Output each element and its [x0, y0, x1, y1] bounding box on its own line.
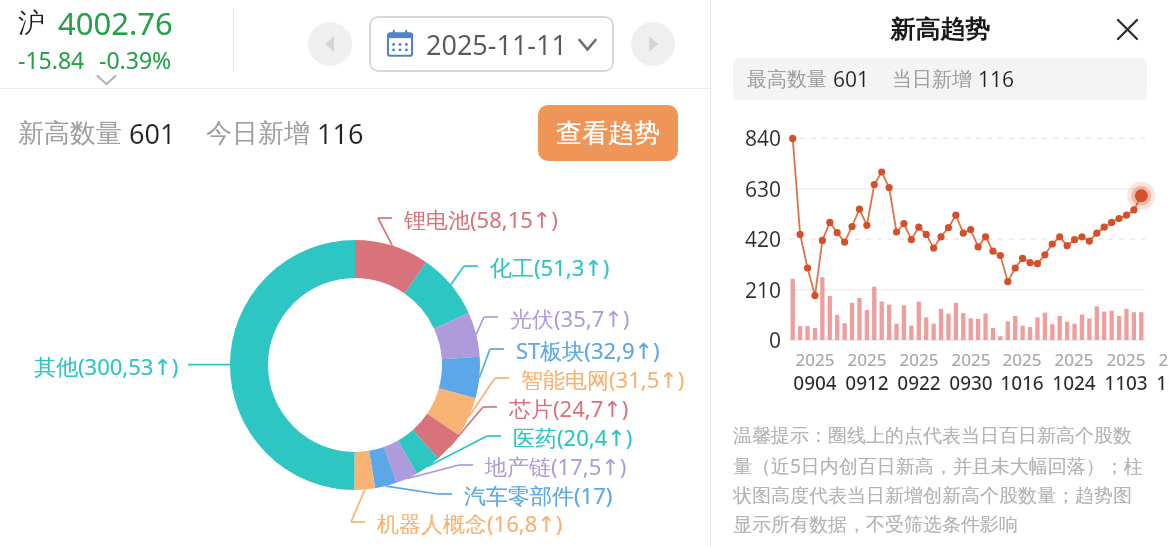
- staticText: 116: [317, 115, 364, 152]
- staticText: 光伏(35,7↑): [510, 303, 630, 333]
- staticText: 医药(20,4↑): [513, 422, 633, 452]
- staticText: 0912: [839, 370, 895, 396]
- staticText: 4002.76: [58, 2, 173, 44]
- staticText: 420: [733, 225, 781, 254]
- staticText: 地产链(17,5↑): [485, 451, 627, 481]
- staticText: 116: [978, 65, 1015, 94]
- staticText: ST板块(32,9↑): [516, 335, 660, 365]
- staticText: 601: [129, 115, 176, 152]
- button[interactable]: 查看趋势: [538, 105, 678, 161]
- button[interactable]: Close: [1107, 9, 1147, 49]
- staticText: -0.39%: [99, 44, 172, 75]
- staticText: 2025: [994, 348, 1050, 371]
- staticText: 智能电网(31,5↑): [521, 364, 685, 394]
- staticText: 2025: [839, 348, 895, 371]
- staticText: 0922: [891, 370, 947, 396]
- staticText: 当日新增: [892, 67, 972, 92]
- staticText: 2025: [1150, 348, 1169, 371]
- button[interactable]: 2025-11-11: [369, 16, 614, 72]
- staticText: 0930: [943, 370, 999, 396]
- staticText: 210: [733, 276, 781, 305]
- staticText: 芯片(24,7↑): [509, 393, 629, 423]
- staticText: 1024: [1046, 370, 1102, 396]
- staticText: 汽车零部件(17): [464, 480, 613, 510]
- button[interactable]: Previous day: [308, 22, 352, 66]
- staticText: 2025: [943, 348, 999, 371]
- staticText: -15.84: [18, 44, 85, 75]
- staticText: 2025: [1098, 348, 1154, 371]
- staticText: 温馨提示：圈线上的点代表当日百日新高个股数量（近5日内创百日新高，并且未大幅回落…: [733, 424, 1147, 536]
- staticText: 2025: [891, 348, 947, 371]
- button[interactable]: 沪: [18, 2, 188, 87]
- staticText: 锂电池(58,15↑): [404, 204, 558, 234]
- staticText: 其他(300,53↑): [34, 351, 179, 381]
- staticText: 630: [733, 175, 781, 204]
- staticText: 最高数量: [747, 67, 827, 92]
- staticText: 2025: [787, 348, 843, 371]
- staticText: 840: [733, 124, 781, 153]
- staticText: 新高趋势: [890, 14, 990, 45]
- staticText: 机器人概念(16,8↑): [377, 508, 563, 538]
- staticText: 化工(51,3↑): [490, 252, 610, 282]
- button[interactable]: Next day: [631, 22, 675, 66]
- staticText: 1103: [1098, 370, 1154, 396]
- staticText: 2025: [1046, 348, 1102, 371]
- staticText: 0904: [787, 370, 843, 396]
- staticText: 1111: [1150, 370, 1169, 396]
- staticText: 0: [733, 326, 781, 355]
- staticText: 2025-11-11: [426, 26, 567, 63]
- staticText: 601: [833, 65, 870, 94]
- staticText: 1016: [994, 370, 1050, 396]
- staticText: 新高数量: [18, 117, 122, 150]
- staticText: 查看趋势: [556, 117, 660, 150]
- staticText: 沪: [18, 6, 45, 40]
- staticText: 今日新增: [206, 117, 310, 150]
